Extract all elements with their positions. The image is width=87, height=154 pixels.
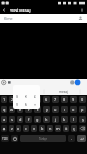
button[interactable]: 7 [52,96,59,103]
button[interactable]: Emoji [11,135,18,142]
button[interactable]: 0 [79,96,86,103]
staticText: b [41,126,44,131]
staticText: € [25,94,28,99]
button[interactable]: m [55,125,61,132]
button[interactable]: Shift [1,125,7,132]
staticText: k [63,117,66,122]
button[interactable]: s [9,116,15,123]
button[interactable]: e [17,106,23,113]
button[interactable]: v [31,125,37,132]
button[interactable]: ç [71,125,77,132]
staticText: v [33,126,35,131]
staticText: 6 [45,97,48,102]
staticText: q [3,107,6,112]
button[interactable]: ?123 [1,135,9,142]
staticText: 0 [81,97,84,102]
staticText: l [73,117,75,122]
button[interactable]: n [47,125,53,132]
button[interactable]: 6 [43,96,50,103]
staticText: c [25,126,27,131]
button[interactable]: d [17,116,23,123]
button[interactable]: ¥ [13,100,22,109]
button[interactable]: j [52,116,59,123]
button[interactable]: . [68,135,75,142]
staticText: w [10,107,14,112]
button[interactable]: b [39,125,45,132]
staticText: 9 [72,97,75,102]
button[interactable]: r [25,106,32,113]
button[interactable]: Backspace [79,125,86,132]
staticText: 8 [63,97,66,102]
button[interactable]: 1 [1,96,7,103]
button[interactable]: h [43,116,50,123]
button[interactable]: ş [79,116,86,123]
button[interactable]: Türkçe [20,135,66,142]
staticText: m [56,126,60,131]
button[interactable]: 2 [9,96,15,103]
staticText: Kime [4,16,13,21]
button[interactable]: q [1,106,7,113]
staticText: j [55,117,57,122]
button[interactable]: l [70,116,77,123]
button[interactable]: 9 [70,96,77,103]
staticText: ş [82,117,84,122]
staticText: ı [64,107,66,112]
button[interactable]: 5 [34,96,41,103]
staticText: z [11,126,13,131]
button[interactable]: z [9,125,14,132]
staticText: 1 [3,97,6,102]
button[interactable]: £ [31,92,40,100]
staticText: × [34,102,37,107]
staticText: s [11,117,13,122]
staticText: g [36,117,39,122]
staticText: p [81,107,84,112]
button[interactable]: y [43,106,50,113]
staticText: ₺ [25,102,28,107]
button[interactable]: t [34,106,41,113]
button[interactable]: Kime [0,14,87,23]
button[interactable]: 3 [17,96,23,103]
button[interactable]: Back [0,6,8,14]
button[interactable]: Contacts [76,14,85,23]
button[interactable]: ı [61,106,68,113]
staticText: r [28,107,30,112]
button[interactable]: o [70,106,77,113]
button[interactable]: € [22,92,31,100]
button[interactable]: x [16,125,21,132]
staticText: f [28,117,30,122]
staticText: n [49,126,52,131]
button[interactable]: p [79,106,86,113]
button[interactable]: More options [78,6,86,14]
button[interactable]: ₺ [22,100,31,109]
button[interactable]: g [34,116,41,123]
staticText: h [45,117,48,122]
staticText: y [46,107,48,112]
button[interactable]: k [61,116,68,123]
button[interactable]: ö [63,125,69,132]
staticText: d [19,117,22,122]
staticText: £ [34,94,37,99]
button[interactable]: a [1,116,7,123]
button[interactable]: Enter [77,135,86,142]
button[interactable]: c [23,125,29,132]
button[interactable]: 4 [25,96,32,103]
staticText: e [19,107,22,112]
staticText: 7 [54,97,57,102]
staticText: 2 [11,97,14,102]
staticText: x [17,126,20,131]
staticText: ç [73,126,75,131]
staticText: u [54,107,57,112]
button[interactable]: w [9,106,15,113]
staticText: YENİ MESAJ [10,8,31,13]
button[interactable]: f [25,116,32,123]
button[interactable]: $ [13,92,22,100]
staticText: $ [16,94,19,99]
button[interactable]: u [52,106,59,113]
staticText: mesaj [59,90,68,94]
button[interactable]: × [31,100,40,109]
button[interactable]: 8 [61,96,68,103]
staticText: . [71,136,73,141]
